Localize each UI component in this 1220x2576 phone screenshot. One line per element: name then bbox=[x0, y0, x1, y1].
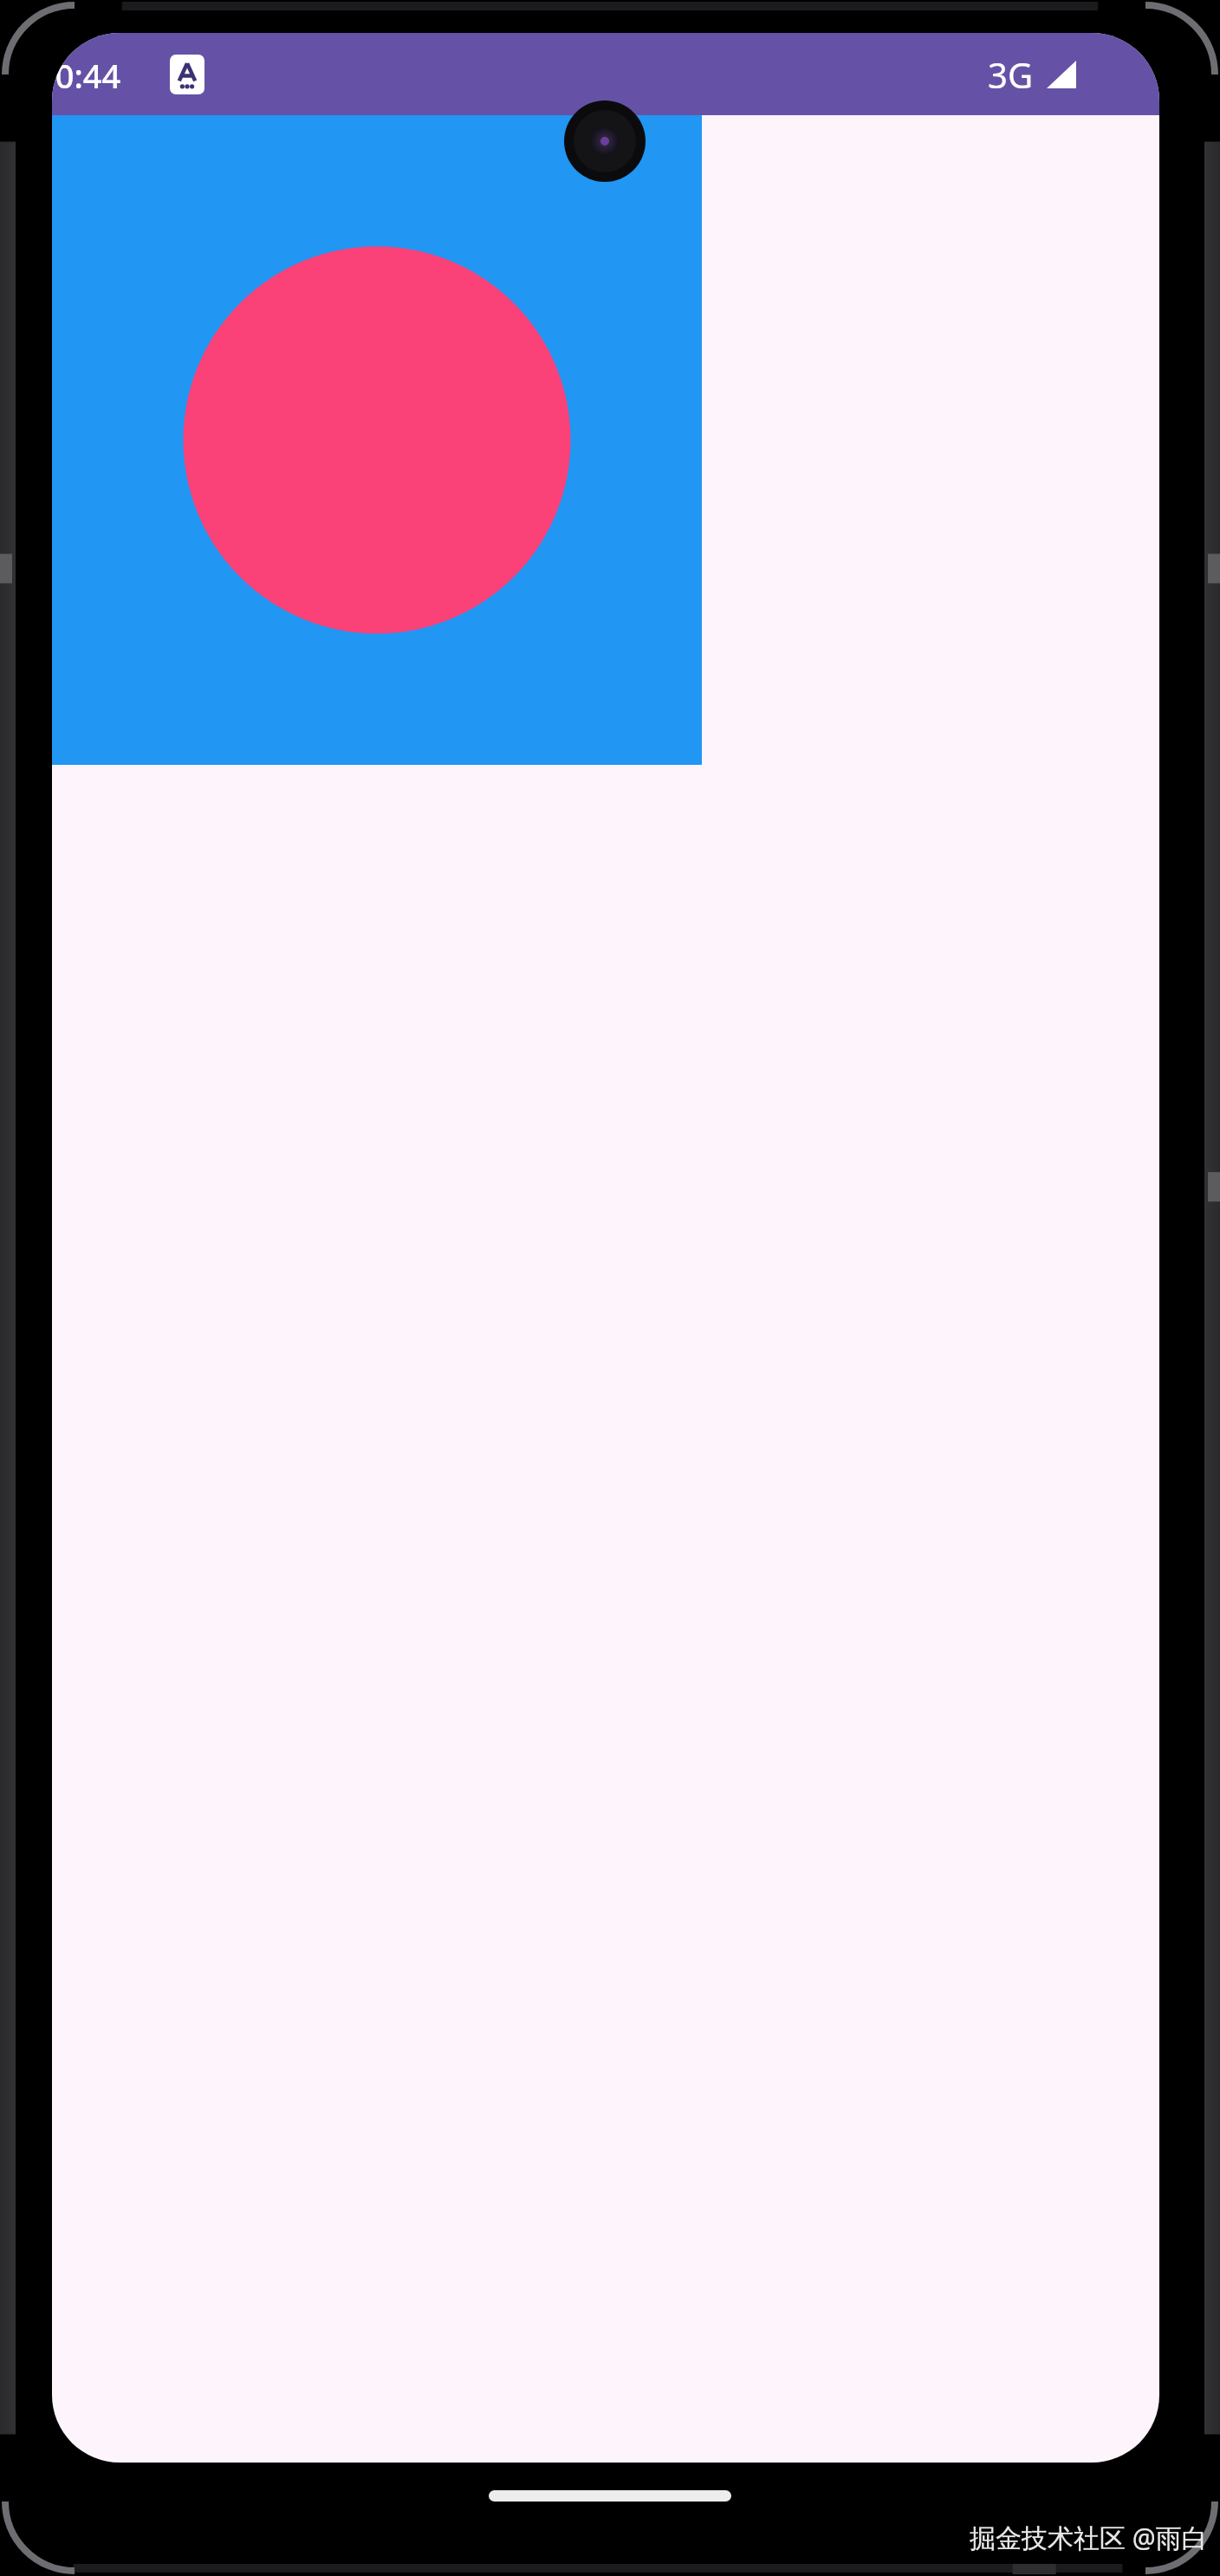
staticText: 10:44 bbox=[52, 53, 121, 98]
staticText: 掘金技术社区 @雨白 bbox=[970, 2520, 1208, 2555]
button[interactable]: Input method bbox=[170, 55, 204, 94]
staticText: 3G bbox=[988, 51, 1033, 98]
button[interactable] bbox=[52, 115, 702, 765]
button[interactable]: Home bbox=[489, 2490, 731, 2502]
